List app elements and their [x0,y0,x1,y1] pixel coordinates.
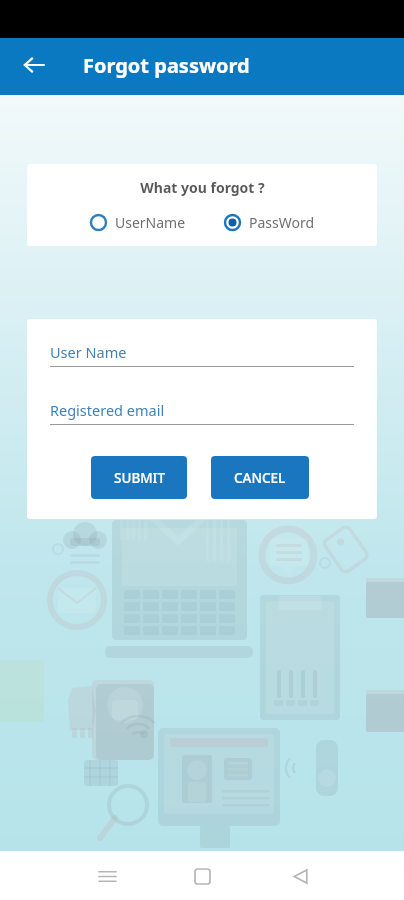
button[interactable]: Recents [87,856,127,896]
staticText: What you forgot ? [140,178,265,197]
staticText: PassWord [249,213,315,232]
staticText: User Name [50,342,127,362]
staticText: Forgot password [83,52,250,79]
staticText: UserName [115,213,186,232]
button[interactable]: User Name [50,342,354,367]
button[interactable]: SUBMIT [91,456,187,499]
button[interactable]: UserName [87,211,188,234]
button[interactable]: Registered email [50,400,354,425]
button[interactable]: Back [14,45,54,85]
button[interactable]: CANCEL [211,456,309,499]
button[interactable]: Back [280,856,320,896]
staticText: Registered email [50,400,165,420]
button[interactable]: PassWord [221,211,317,234]
button[interactable]: Home [182,856,222,896]
staticText: CANCEL [234,469,286,487]
staticText: SUBMIT [114,469,165,487]
